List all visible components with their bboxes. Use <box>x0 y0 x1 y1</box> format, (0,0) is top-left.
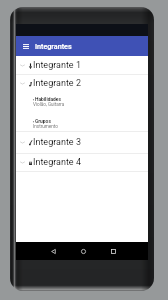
button[interactable]: Back <box>48 246 59 257</box>
staticText: Habilidades <box>35 96 61 102</box>
button[interactable]: Integrante 3 <box>16 132 148 153</box>
staticText: Integrante 3 <box>33 137 81 148</box>
button[interactable]: Integrante 2 <box>16 75 148 92</box>
staticText: Integrante 4 <box>33 157 81 168</box>
staticText: Integrante 1 <box>33 60 81 71</box>
button[interactable]: Integrante 1 <box>16 56 148 74</box>
button[interactable]: Recent apps <box>108 246 119 257</box>
staticText: Grupos <box>35 118 51 124</box>
button[interactable]: Open navigation menu <box>20 37 31 55</box>
button[interactable]: Home <box>78 246 89 257</box>
staticText: Integrantes <box>35 42 72 50</box>
button[interactable]: Integrante 4 <box>16 154 148 171</box>
staticText: Integrante 2 <box>33 78 81 89</box>
staticText: Instrumento <box>33 124 58 129</box>
staticText: Violão, Guitarra <box>33 102 65 107</box>
